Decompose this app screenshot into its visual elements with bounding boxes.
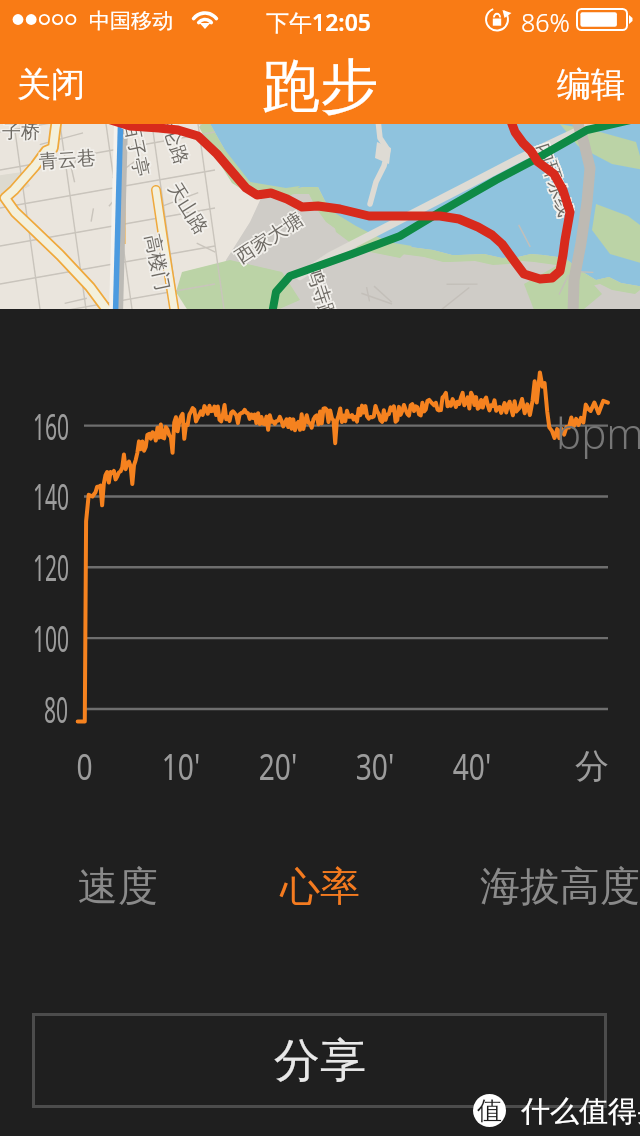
staticText: 0 <box>76 742 93 790</box>
button[interactable]: Route map <box>0 124 640 309</box>
button[interactable]: 海拔高度 <box>463 852 640 920</box>
staticText: 40' <box>452 742 491 790</box>
button[interactable]: 分享 <box>32 1013 607 1108</box>
button[interactable]: 编辑 <box>541 51 640 118</box>
button[interactable]: 速度 <box>61 852 175 920</box>
staticText: 跑步 <box>262 50 378 123</box>
staticText: 值 <box>477 1095 502 1126</box>
staticText: 分享 <box>274 1032 366 1090</box>
staticText: 编辑 <box>557 63 625 106</box>
staticText: 80 <box>44 685 69 734</box>
staticText: 什么值得买 <box>506 1090 640 1130</box>
staticText: 20' <box>258 742 297 790</box>
staticText: 10' <box>161 742 200 790</box>
staticText: 分 <box>575 745 609 788</box>
button[interactable]: 心率 <box>263 852 377 920</box>
staticText: 中国移动 <box>89 8 173 34</box>
staticText: 30' <box>355 742 394 790</box>
staticText: 关闭 <box>17 63 85 106</box>
staticText: 心率 <box>280 861 360 911</box>
staticText: 86% <box>521 5 570 39</box>
button[interactable]: 关闭 <box>1 51 101 118</box>
staticText: 140 <box>33 472 69 521</box>
staticText: bpm <box>556 404 640 461</box>
staticText: 下午12:05 <box>266 6 371 37</box>
staticText: 100 <box>33 614 69 663</box>
staticText: 速度 <box>78 861 158 911</box>
staticText: 120 <box>33 543 69 592</box>
staticText: 160 <box>33 402 69 451</box>
staticText: 海拔高度 <box>480 861 640 911</box>
